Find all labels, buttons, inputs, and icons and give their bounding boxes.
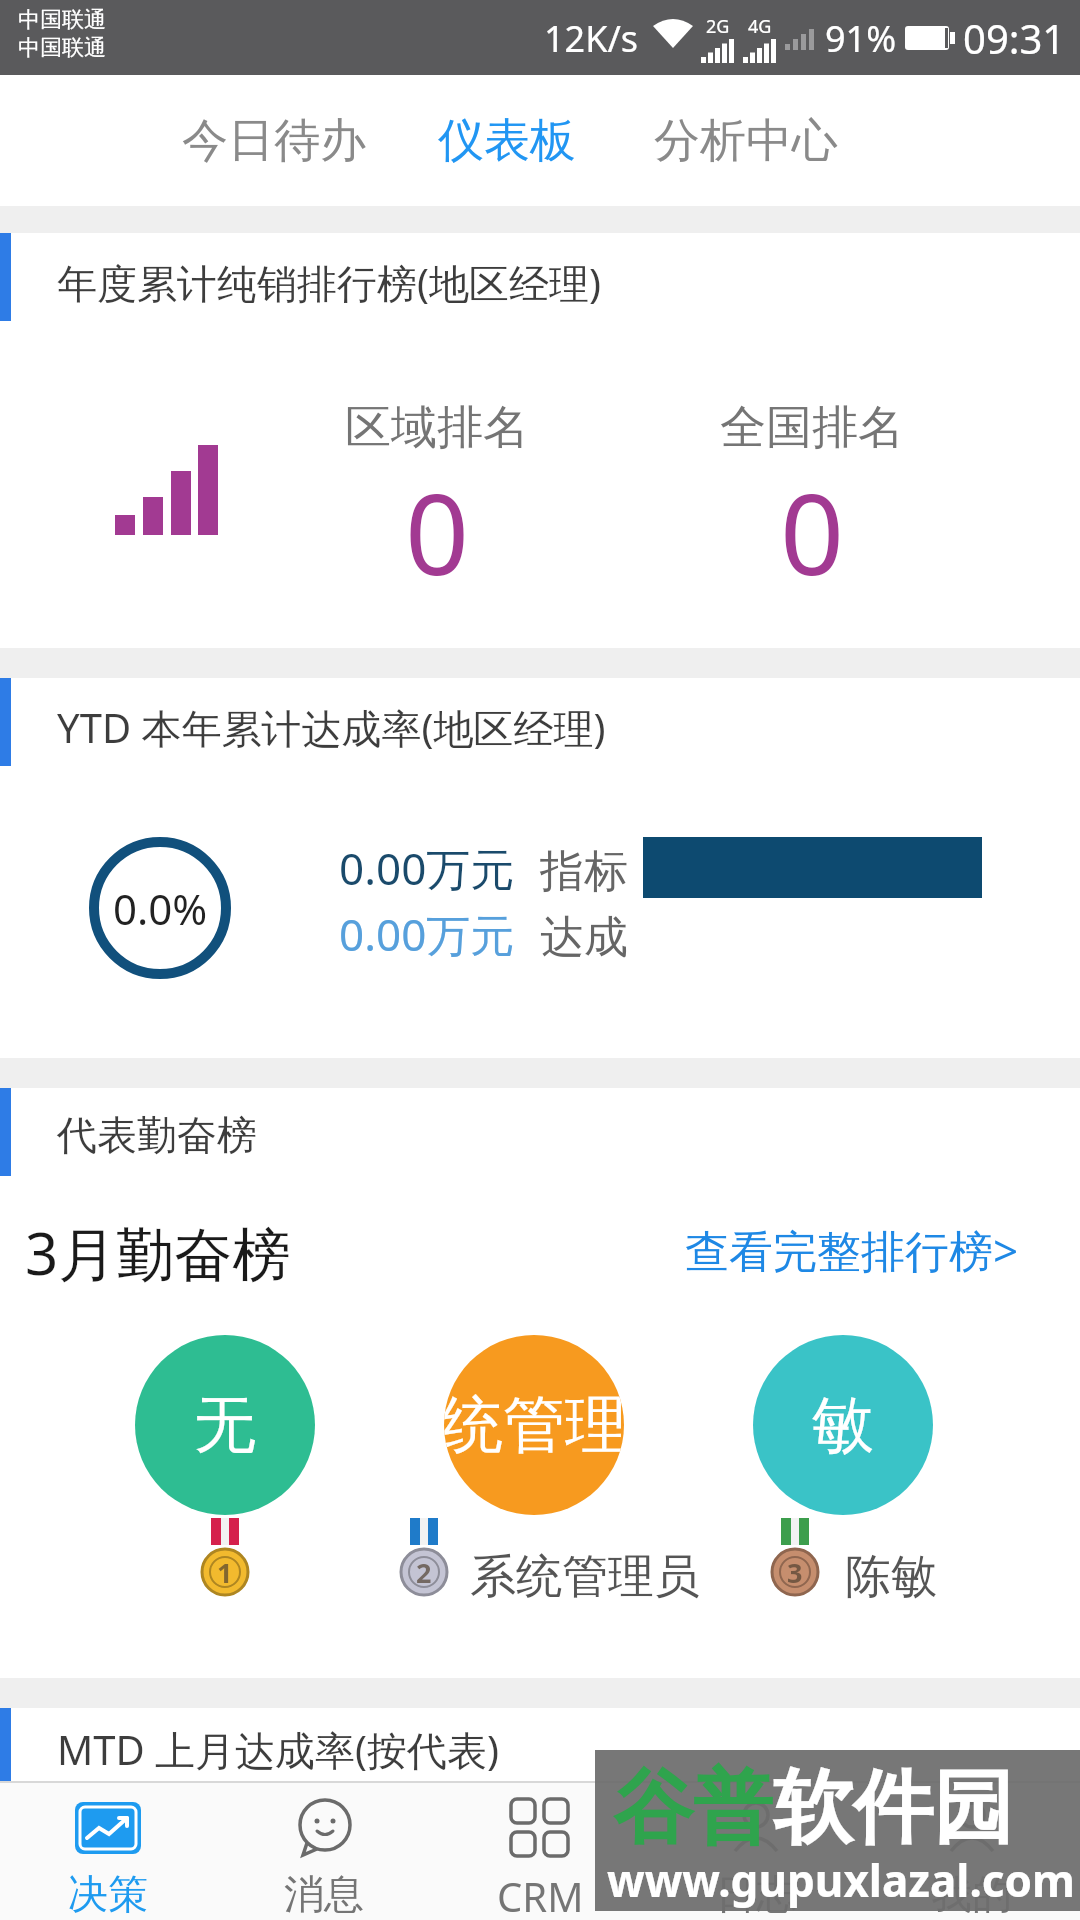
staticText: 区域排名 (345, 399, 529, 457)
staticText: MTD 上月达成率(按代表) (57, 1722, 500, 1777)
staticText: 中国联通 (18, 34, 106, 62)
staticText: 0 (780, 455, 845, 580)
staticText: 达成 (540, 910, 628, 965)
staticText: 12K/s (544, 14, 639, 63)
staticText: 系统管理员 (444, 1386, 624, 1464)
staticText: 4G (748, 14, 772, 39)
button[interactable]: 日志 (648, 1797, 864, 1920)
staticText: 无 (194, 1386, 256, 1464)
staticText: 系统管理员 (470, 1548, 700, 1606)
staticText: 日志 (716, 1869, 796, 1919)
button[interactable]: 今日待办 (182, 112, 366, 170)
staticText: 0.0% (113, 880, 208, 937)
button[interactable]: 决策 (0, 1797, 216, 1920)
staticText: 2G (706, 14, 730, 39)
staticText: 消息 (284, 1869, 364, 1919)
staticText: 谷普 (613, 1758, 773, 1859)
staticText: www.gupuxlazal.com (607, 1850, 1075, 1910)
staticText: 我的 (932, 1869, 1012, 1919)
button[interactable]: 我的 (864, 1797, 1080, 1920)
staticText: 09:31 (963, 11, 1066, 65)
button[interactable]: 查看完整排行榜> (685, 1220, 1019, 1280)
staticText: 敏 (812, 1386, 874, 1464)
staticText: 陈敏 (845, 1548, 937, 1606)
button[interactable]: 敏 (753, 1335, 933, 1515)
staticText: 1 (217, 1554, 233, 1591)
staticText: YTD 本年累计达成率(地区经理) (57, 700, 606, 755)
button[interactable]: CRM (432, 1797, 648, 1920)
staticText: 2 (416, 1554, 432, 1591)
staticText: 0.00万元 (339, 838, 515, 896)
button[interactable]: 无 (135, 1335, 315, 1515)
staticText: 代表勤奋榜 (57, 1110, 257, 1160)
staticText: 软件园 (773, 1758, 1013, 1859)
button[interactable]: 系统管理员 (444, 1335, 624, 1515)
staticText: 年度累计纯销排行榜(地区经理) (57, 255, 601, 310)
button[interactable]: 分析中心 (654, 112, 838, 170)
staticText: 0 (405, 455, 470, 580)
staticText: 决策 (68, 1869, 148, 1919)
staticText: 指标 (540, 844, 628, 899)
button[interactable]: 仪表板 (438, 112, 576, 170)
button[interactable]: 消息 (216, 1797, 432, 1920)
staticText: 全国排名 (720, 399, 904, 457)
staticText: 0.00万元 (339, 904, 515, 962)
staticText: 91% (825, 14, 897, 63)
staticText: 中国联通 (18, 6, 106, 34)
staticText: 3 (787, 1554, 803, 1591)
staticText: CRM (497, 1869, 584, 1920)
staticText: 3月勤奋榜 (25, 1213, 291, 1292)
